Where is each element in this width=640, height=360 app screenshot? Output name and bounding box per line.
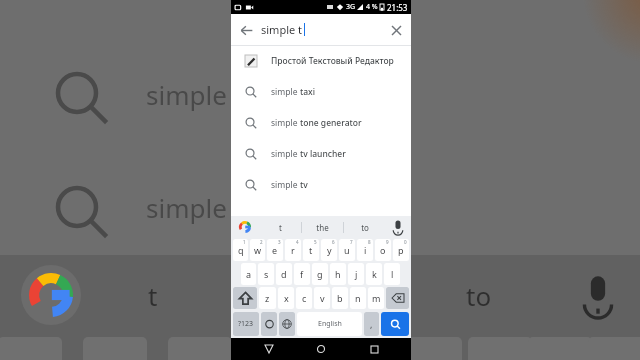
button[interactable]: Change language [279, 312, 295, 336]
staticText: t [309, 244, 313, 256]
staticText: 3G [346, 2, 356, 12]
staticText: q [238, 244, 244, 256]
button[interactable]: s [258, 263, 274, 285]
staticText: 0 [404, 239, 407, 245]
button[interactable]: f [294, 263, 310, 285]
staticText: tv [300, 179, 308, 191]
button[interactable]: t [303, 239, 319, 261]
staticText: 9 [386, 239, 389, 245]
staticText: i [364, 244, 367, 256]
staticText: y [327, 244, 332, 256]
button[interactable]: Home [306, 338, 336, 360]
staticText: simple [146, 190, 227, 225]
button[interactable]: d [276, 263, 292, 285]
staticText: Простой Текстовый Редактор [271, 55, 394, 67]
button[interactable]: simple [231, 76, 411, 107]
button[interactable]: c [296, 287, 312, 309]
staticText: simple [271, 179, 300, 191]
button[interactable]: Back [231, 15, 261, 45]
staticText: b [337, 292, 343, 304]
staticText: simple [271, 86, 300, 98]
staticText: the [316, 222, 329, 233]
button[interactable]: a [241, 263, 256, 285]
button[interactable]: o [375, 239, 391, 261]
button[interactable]: Symbols [233, 312, 259, 336]
button[interactable]: z [259, 287, 276, 309]
staticText: n [355, 292, 361, 304]
staticText: to [361, 222, 369, 233]
button[interactable]: English [297, 312, 362, 336]
button[interactable]: Shift [233, 287, 257, 309]
button[interactable]: x [278, 287, 294, 309]
button[interactable]: v [314, 287, 330, 309]
button[interactable]: g [312, 263, 328, 285]
staticText: x [284, 292, 289, 304]
staticText: u [344, 244, 350, 256]
button[interactable]: the [302, 216, 343, 238]
button[interactable]: Backspace [386, 287, 409, 309]
button[interactable]: Clear [381, 15, 411, 45]
button[interactable]: w [250, 239, 265, 261]
staticText: ?123 [238, 319, 254, 329]
button[interactable]: j [348, 263, 364, 285]
staticText: m [372, 292, 381, 304]
staticText: z [265, 292, 270, 304]
button[interactable]: y [321, 239, 337, 261]
staticText: 5 [314, 239, 317, 245]
staticText: t [279, 222, 282, 233]
staticText: g [317, 268, 323, 280]
button[interactable]: l [384, 263, 400, 285]
staticText: s [264, 268, 269, 280]
staticText: w [254, 244, 262, 256]
button[interactable]: Простой Текстовый Редактор [231, 46, 411, 76]
staticText: simple [146, 77, 227, 112]
button[interactable]: Google [231, 216, 259, 238]
staticText: 4 [296, 239, 299, 245]
staticText: l [391, 268, 394, 280]
button[interactable]: e [267, 239, 283, 261]
staticText: r [291, 244, 295, 256]
button[interactable]: u [339, 239, 355, 261]
staticText: simple [271, 117, 300, 129]
button[interactable]: h [330, 263, 346, 285]
button[interactable]: to [344, 216, 385, 238]
button[interactable]: p [393, 239, 409, 261]
staticText: simple t [261, 22, 303, 37]
button[interactable]: Search [381, 312, 409, 336]
staticText: a [246, 268, 252, 280]
staticText: 8 [368, 239, 371, 245]
button[interactable]: q [233, 239, 248, 261]
button[interactable]: n [350, 287, 366, 309]
staticText: taxi [300, 86, 316, 98]
staticText: tv launcher [300, 148, 346, 160]
button[interactable]: i [357, 239, 373, 261]
button[interactable]: Back [254, 338, 284, 360]
staticText: o [380, 244, 386, 256]
button[interactable]: Comma [364, 312, 379, 336]
staticText: k [372, 268, 377, 280]
staticText: to [466, 278, 492, 313]
staticText: t [148, 278, 158, 313]
button[interactable]: Recent apps [359, 338, 389, 360]
staticText: e [272, 244, 278, 256]
button[interactable]: simple [231, 169, 411, 200]
staticText: 4 % [366, 2, 378, 12]
staticText: 3 [278, 239, 281, 245]
staticText: v [320, 292, 325, 304]
staticText: p [398, 244, 404, 256]
button[interactable]: m [368, 287, 384, 309]
button[interactable]: Voice input [385, 216, 411, 238]
staticText: English [318, 319, 342, 329]
staticText: 2 [260, 239, 263, 245]
staticText: 21:53 [387, 2, 408, 13]
button[interactable]: b [332, 287, 348, 309]
button[interactable]: simple [231, 107, 411, 138]
staticText: 6 [332, 239, 335, 245]
staticText: f [300, 268, 304, 280]
button[interactable]: t [259, 216, 301, 238]
button[interactable]: simple [231, 138, 411, 169]
button[interactable]: r [285, 239, 301, 261]
button[interactable]: Emoji [261, 312, 277, 336]
button[interactable]: k [366, 263, 382, 285]
staticText: 7 [350, 239, 353, 245]
